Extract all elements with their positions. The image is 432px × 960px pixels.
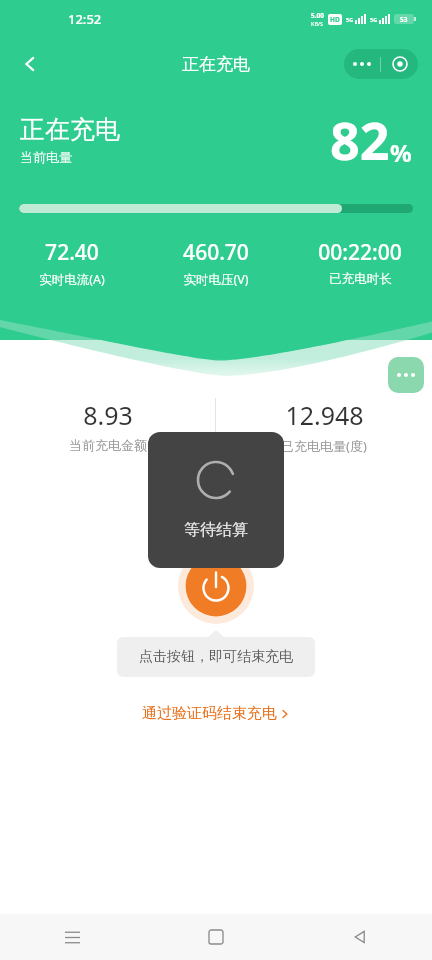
button[interactable]: Stop charging bbox=[178, 548, 254, 624]
staticText: 5G bbox=[346, 16, 354, 23]
staticText: 等待结算 bbox=[184, 520, 248, 540]
staticText: 实时电压(V) bbox=[183, 271, 249, 288]
staticText: 已充电电量(度) bbox=[281, 437, 367, 455]
button[interactable]: Recent apps bbox=[52, 917, 92, 957]
button[interactable]: Back bbox=[340, 917, 380, 957]
staticText: 12.948 bbox=[285, 398, 364, 432]
staticText: 12:52 bbox=[68, 10, 102, 28]
staticText: % bbox=[390, 136, 412, 169]
button[interactable]: Back bbox=[8, 42, 52, 86]
staticText: HD bbox=[330, 15, 340, 24]
staticText: 当前充电金额 bbox=[69, 437, 147, 453]
staticText: 已充电时长 bbox=[329, 271, 392, 287]
button[interactable]: Home bbox=[196, 917, 236, 957]
staticText: 00:22:00 bbox=[318, 238, 402, 267]
staticText: 点击按钮，即可结束充电 bbox=[139, 648, 293, 666]
staticText: 72.40 bbox=[45, 238, 99, 267]
staticText: 5G bbox=[370, 16, 378, 23]
staticText: 8.93 bbox=[83, 398, 133, 432]
staticText: 通过验证码结束充电 bbox=[142, 704, 277, 723]
staticText: 460.70 bbox=[183, 238, 249, 267]
staticText: 53 bbox=[400, 15, 408, 24]
staticText: KB/S bbox=[311, 20, 324, 27]
staticText: 正在充电 bbox=[20, 114, 120, 145]
button[interactable]: More bbox=[388, 357, 424, 393]
staticText: 正在充电 bbox=[182, 54, 250, 75]
staticText: 实时电流(A) bbox=[39, 271, 105, 288]
button[interactable]: More options bbox=[344, 49, 380, 79]
staticText: 5.00 bbox=[311, 11, 324, 20]
staticText: 82 bbox=[330, 104, 390, 175]
staticText: 当前电量 bbox=[20, 149, 72, 165]
button[interactable]: Close bbox=[381, 49, 418, 79]
button[interactable]: 点击按钮，即可结束充电 bbox=[117, 637, 315, 677]
button[interactable]: 通过验证码结束充电 bbox=[130, 698, 302, 729]
